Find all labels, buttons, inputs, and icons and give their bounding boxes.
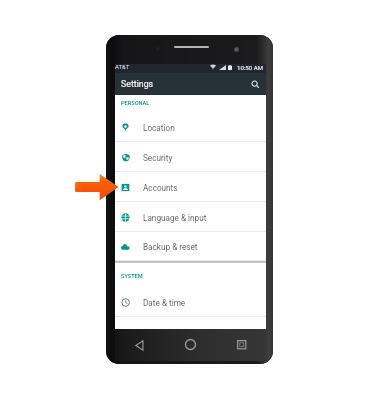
button[interactable]: Security bbox=[115, 142, 266, 172]
button[interactable]: Date & time bbox=[115, 287, 266, 317]
staticText: Accounts bbox=[143, 183, 178, 193]
staticText: AT&T bbox=[115, 64, 130, 71]
staticText: Backup & reset bbox=[143, 242, 198, 252]
button[interactable]: Home bbox=[185, 339, 196, 350]
button[interactable]: Recent apps bbox=[237, 340, 247, 350]
button[interactable]: Back bbox=[135, 339, 144, 352]
button[interactable]: Location bbox=[115, 112, 266, 142]
staticText: Settings bbox=[121, 79, 154, 89]
staticText: PERSONAL bbox=[121, 100, 150, 107]
button[interactable]: Language & input bbox=[115, 202, 266, 232]
staticText: Date & time bbox=[143, 298, 186, 308]
staticText: 10:50 AM bbox=[237, 64, 263, 71]
staticText: Language & input bbox=[143, 213, 207, 223]
button[interactable]: Backup & reset bbox=[115, 231, 266, 261]
button[interactable]: Accounts bbox=[115, 172, 266, 202]
button[interactable]: Search bbox=[250, 79, 261, 90]
staticText: Location bbox=[143, 123, 175, 133]
staticText: SYSTEM bbox=[121, 273, 143, 280]
staticText: Security bbox=[143, 153, 173, 163]
